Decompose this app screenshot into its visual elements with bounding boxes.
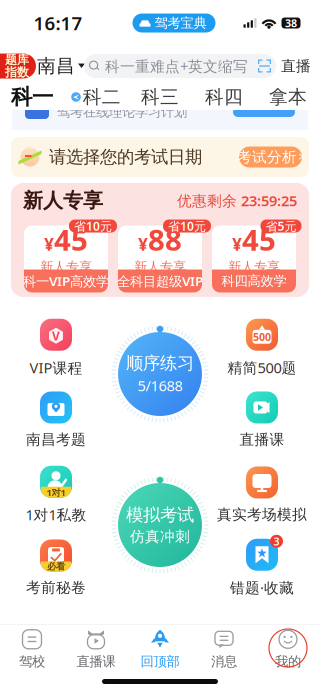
staticText: 错题·收藏 — [230, 578, 294, 597]
staticText: 新人专享 — [23, 188, 103, 213]
staticText: 请选择您的考试日期 — [49, 146, 202, 168]
staticText: 驾考在线理论学习计划 — [57, 104, 187, 120]
staticText: 科四高效学 — [221, 273, 286, 289]
button[interactable]: 顺序练习 — [110, 324, 210, 424]
staticText: 仿真冲刺 — [130, 528, 190, 546]
button[interactable]: 必看 — [4, 540, 108, 596]
staticText: ¥ — [138, 232, 148, 255]
staticText: 南昌考题 — [26, 430, 86, 448]
staticText: 16:17 — [33, 11, 82, 35]
staticText: V — [52, 328, 60, 344]
button[interactable]: 模拟考试 — [110, 475, 210, 575]
staticText: 科三 — [141, 85, 179, 108]
button[interactable]: V — [4, 320, 108, 376]
button[interactable]: 500 — [210, 320, 314, 376]
button[interactable]: 我的 — [256, 625, 320, 673]
button[interactable]: 驾校 — [0, 625, 64, 673]
staticText: 题库 — [5, 52, 29, 67]
staticText: 直播课 — [239, 430, 284, 448]
staticText: 新人专享 — [40, 259, 92, 275]
staticText: 回顶部 — [140, 653, 179, 670]
staticText: 科一VIP高效学 — [23, 272, 109, 290]
button[interactable]: 回顶部 — [128, 625, 192, 673]
button[interactable]: 直播 — [281, 54, 311, 78]
staticText: 省10元 — [168, 218, 206, 234]
staticText: 顺序练习 — [126, 353, 194, 374]
button[interactable]: 3 — [210, 540, 314, 596]
staticText: ¥ — [232, 232, 242, 255]
staticText: 500 — [253, 330, 271, 344]
button[interactable]: 请选择您的考试日期 — [11, 137, 309, 177]
button[interactable]: 科三 — [128, 84, 192, 110]
staticText: 新人专享 — [134, 259, 186, 275]
button[interactable]: 科一 — [0, 84, 64, 110]
staticText: 真实考场模拟 — [217, 505, 307, 523]
staticText: 驾考宝典 — [154, 15, 206, 31]
staticText: 拿本 — [269, 85, 307, 108]
staticText: 新人专享 — [228, 259, 280, 275]
staticText: 88 — [148, 220, 182, 259]
button[interactable]: ¥ — [19, 218, 113, 297]
staticText: ¥ — [44, 232, 54, 255]
button[interactable]: 1对1 — [4, 467, 108, 523]
button[interactable]: ¥ — [113, 218, 207, 297]
staticText: 省5元 — [265, 218, 296, 234]
button[interactable]: ¥ — [207, 218, 301, 297]
staticText: 我的 — [275, 653, 301, 670]
staticText: 考前秘卷 — [26, 578, 86, 596]
button[interactable]: 南昌考题 — [4, 392, 108, 448]
button[interactable]: 驾考在线理论学习计划 — [12, 110, 308, 130]
staticText: 优惠剩余 23:59:25 — [177, 191, 297, 210]
button[interactable]: 科二 — [64, 84, 128, 110]
staticText: 45 — [54, 220, 88, 259]
staticText: 1对1私教 — [25, 505, 86, 524]
staticText: 必看 — [47, 561, 65, 572]
staticText: 直播 — [281, 57, 311, 75]
button[interactable]: 拿本 — [256, 84, 320, 110]
staticText: 科二 — [83, 85, 121, 108]
button[interactable]: 消息 — [192, 625, 256, 673]
staticText: 模拟考试 — [126, 504, 194, 526]
staticText: 5/1688 — [137, 376, 182, 395]
staticText: 3 — [273, 534, 279, 548]
staticText: 45 — [242, 220, 276, 259]
staticText: 驾校 — [19, 653, 45, 670]
staticText: 科一重难点+英文缩写 — [105, 56, 248, 76]
staticText: 38 — [285, 16, 297, 30]
staticText: 省10元 — [74, 218, 112, 234]
button[interactable]: 真实考场模拟 — [210, 467, 314, 523]
staticText: 消息 — [211, 653, 237, 670]
button[interactable]: 直播课 — [64, 625, 128, 673]
staticText: 直播课 — [76, 653, 115, 670]
staticText: 指数 — [5, 65, 29, 80]
staticText: 全科目超级VIP — [117, 272, 203, 290]
staticText: VIP课程 — [29, 358, 82, 377]
button[interactable]: 科四 — [192, 84, 256, 110]
staticText: 科四 — [205, 85, 243, 108]
staticText: 南昌 — [37, 54, 75, 77]
button[interactable]: 科一重难点+英文缩写 — [84, 54, 276, 78]
staticText: 考试分析 — [237, 148, 297, 166]
staticText: 科一 — [11, 84, 53, 110]
button[interactable]: 南昌 — [41, 54, 81, 78]
staticText: 1对1 — [46, 486, 65, 498]
button[interactable]: 直播课 — [210, 392, 314, 448]
staticText: 精简500题 — [227, 358, 296, 377]
button[interactable]: 题库指数 — [0, 53, 36, 78]
